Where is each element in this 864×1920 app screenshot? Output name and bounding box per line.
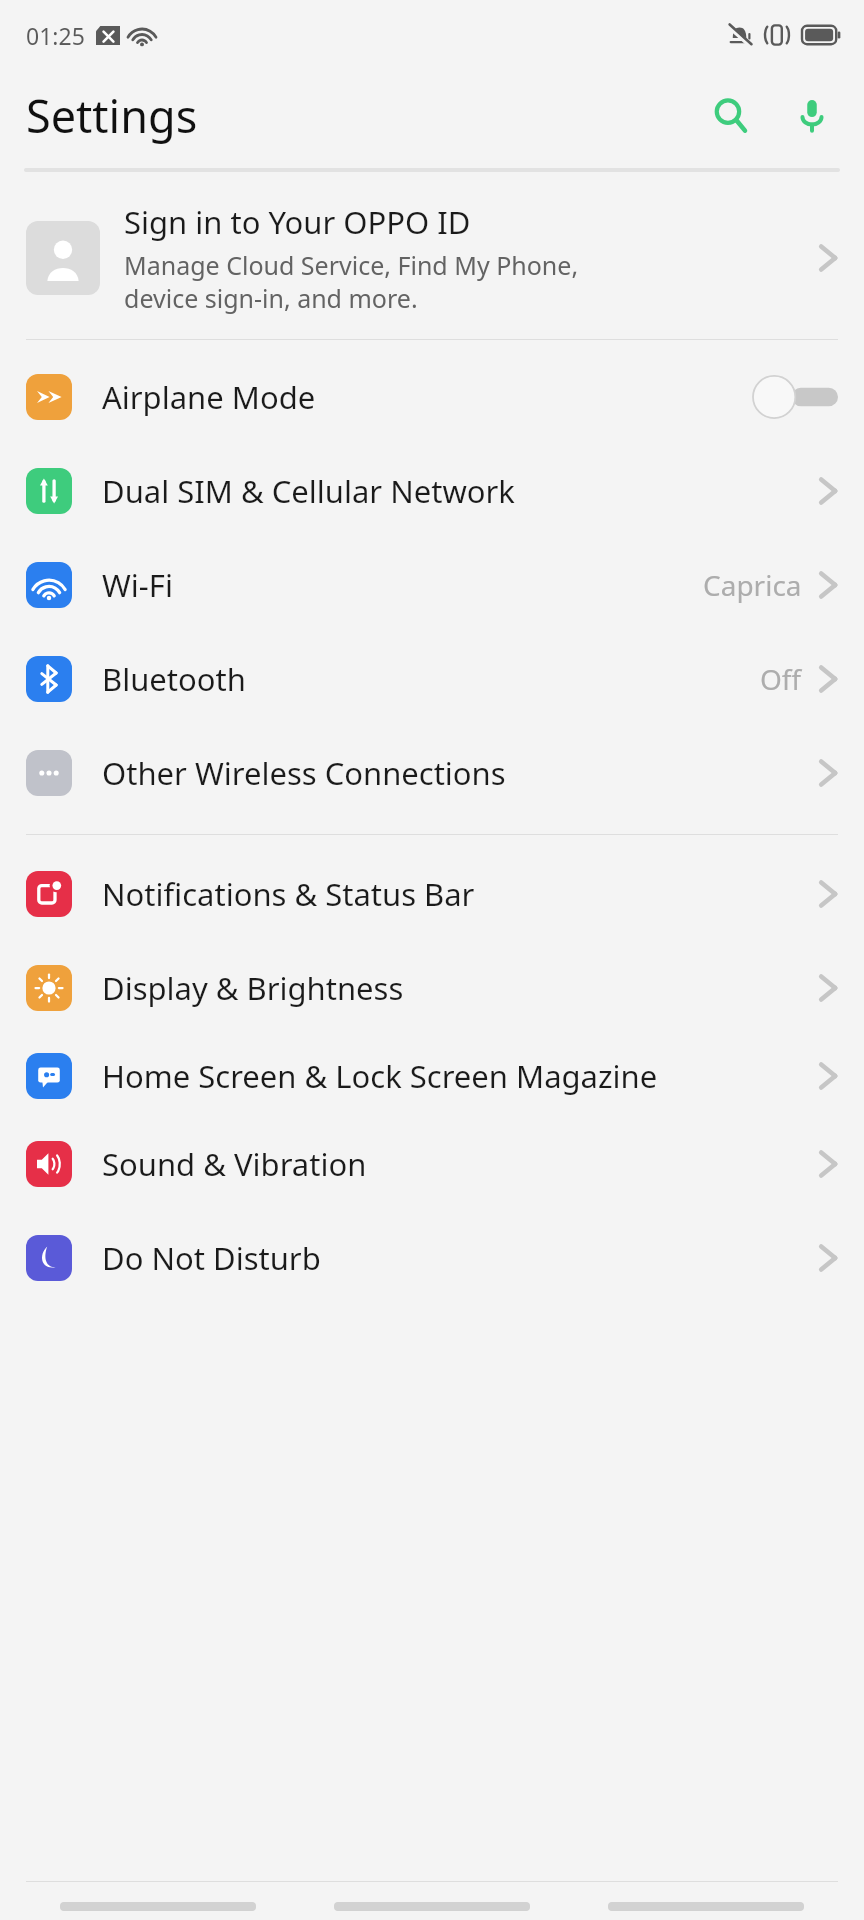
staticText: Home Screen & Lock Screen Magazine (102, 1055, 818, 1097)
button[interactable]: Dual SIM & Cellular Network (0, 444, 864, 538)
button[interactable]: Display & Brightness (0, 941, 864, 1035)
staticText: Notifications & Status Bar (102, 873, 818, 915)
button[interactable]: Airplane Mode (0, 350, 864, 444)
staticText: 01:25 (26, 20, 85, 51)
button[interactable]: Search (700, 85, 760, 145)
button[interactable]: Sign in to Your OPPO ID (0, 189, 864, 327)
button[interactable]: Wi-Fi (0, 538, 864, 632)
staticText: Sound & Vibration (102, 1143, 818, 1185)
staticText: Sign in to Your OPPO ID (124, 201, 471, 243)
button[interactable]: Notifications & Status Bar (0, 847, 864, 941)
staticText: Airplane Mode (102, 376, 752, 418)
button[interactable]: Other Wireless Connections (0, 726, 864, 820)
button[interactable]: Voice search (782, 85, 842, 145)
staticText: Dual SIM & Cellular Network (102, 470, 818, 512)
staticText: Bluetooth (102, 658, 760, 700)
staticText: Display & Brightness (102, 967, 818, 1009)
staticText: Wi-Fi (102, 564, 703, 606)
button[interactable]: Bluetooth (0, 632, 864, 726)
button[interactable]: Airplane mode toggle (752, 374, 838, 420)
button[interactable]: Do Not Disturb (0, 1211, 864, 1305)
staticText: Caprica (703, 566, 802, 604)
staticText: Other Wireless Connections (102, 752, 818, 794)
button[interactable]: Home Screen & Lock Screen Magazine (0, 1035, 864, 1117)
staticText: Off (760, 660, 802, 698)
staticText: Do Not Disturb (102, 1237, 818, 1279)
staticText: Settings (26, 85, 198, 146)
staticText: Manage Cloud Service, Find My Phone, dev… (124, 248, 579, 315)
button[interactable]: Sound & Vibration (0, 1117, 864, 1211)
